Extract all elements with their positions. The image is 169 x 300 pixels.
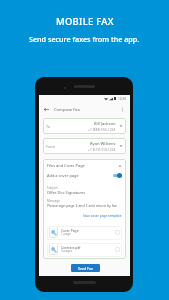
staticText: Message [47, 199, 60, 203]
staticText: Ryan Wilkens [90, 141, 116, 147]
button[interactable]: Contract.pdf [47, 243, 122, 257]
button[interactable]: More options [118, 105, 127, 114]
staticText: Please sign page 2 and 3 and return by f… [47, 203, 117, 208]
staticText: 1 page [61, 232, 71, 236]
staticText: +1 (888) 555-1234 [88, 127, 116, 131]
staticText: 12:30 [118, 97, 126, 101]
staticText: Contract.pdf [61, 245, 81, 249]
staticText: Send Fax [78, 266, 93, 271]
staticText: Cover Page [61, 228, 79, 232]
button[interactable]: Save cover page template [83, 214, 122, 218]
button[interactable]: Cover Page [47, 226, 122, 240]
staticText: To [46, 124, 51, 129]
staticText: Save cover page template [83, 214, 122, 218]
button[interactable]: Send Fax [71, 264, 100, 272]
staticText: Add a cover page [47, 173, 79, 178]
button[interactable]: Back [42, 105, 51, 114]
staticText: Send secure faxes from the app. [29, 34, 140, 44]
staticText: Subject [47, 186, 58, 190]
staticText: +1 (619) 318-1234 [88, 147, 116, 151]
staticText: Files and Cover Page [47, 163, 85, 168]
staticText: Compose Fax [54, 107, 80, 113]
staticText: Offer Doc Signatures [47, 190, 86, 195]
button[interactable]: Add a cover page [113, 173, 122, 178]
staticText: MOBILE FAX [56, 15, 114, 28]
staticText: Bill Jackson [94, 121, 116, 127]
staticText: 3 pages [61, 249, 73, 253]
staticText: From [46, 144, 56, 149]
